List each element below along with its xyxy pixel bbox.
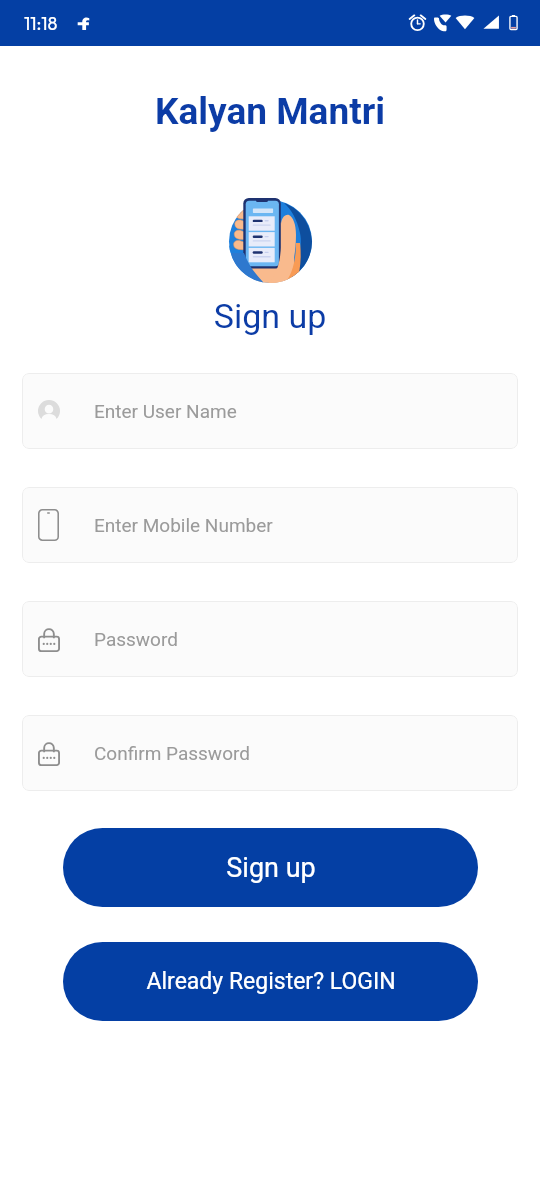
button[interactable]: Sign up bbox=[63, 828, 478, 907]
button[interactable]: Password bbox=[22, 601, 518, 677]
staticText: Enter User Name bbox=[94, 400, 237, 422]
staticText: Password bbox=[94, 628, 178, 650]
button[interactable]: Confirm Password bbox=[22, 715, 518, 791]
staticText: Sign up bbox=[0, 296, 540, 336]
staticText: Kalyan Mantri bbox=[0, 90, 540, 133]
staticText: Already Register? LOGIN bbox=[146, 968, 396, 995]
button[interactable]: Already Register? LOGIN bbox=[63, 942, 478, 1021]
staticText: Enter Mobile Number bbox=[94, 514, 273, 536]
staticText: Confirm Password bbox=[94, 742, 250, 764]
staticText: 11:18 bbox=[24, 12, 58, 35]
button[interactable]: Enter User Name bbox=[22, 373, 518, 449]
button[interactable]: Enter Mobile Number bbox=[22, 487, 518, 563]
staticText: Sign up bbox=[226, 852, 316, 884]
